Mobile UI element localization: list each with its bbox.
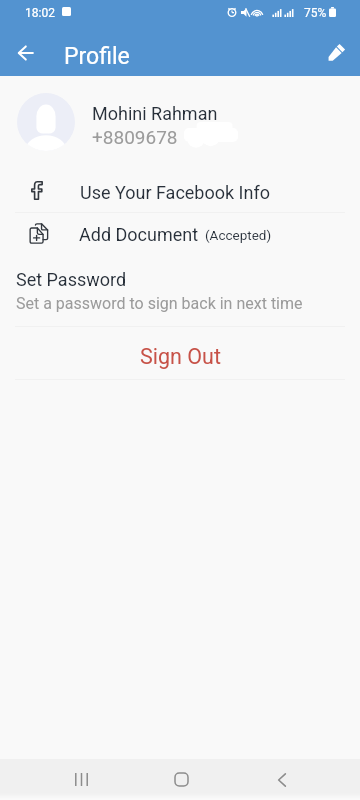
button[interactable]: Recent apps bbox=[41, 759, 121, 800]
button[interactable]: Sign Out bbox=[0, 327, 360, 379]
staticText: +8809678 bbox=[92, 126, 178, 148]
button[interactable]: Navigate up bbox=[3, 28, 47, 72]
button[interactable]: Back bbox=[241, 759, 321, 800]
staticText: Mohini Rahman bbox=[92, 103, 218, 124]
staticText: (Accepted) bbox=[205, 227, 272, 243]
staticText: Use Your Facebook Info bbox=[80, 182, 270, 203]
button[interactable]: Home bbox=[140, 759, 220, 800]
staticText: 18:02 bbox=[25, 6, 55, 20]
staticText: 75% bbox=[304, 6, 327, 20]
button[interactable]: Edit profile bbox=[315, 28, 359, 72]
button[interactable]: Set Password bbox=[0, 262, 360, 326]
staticText: Set a password to sign back in next time bbox=[16, 294, 303, 313]
button[interactable]: Mohini Rahman bbox=[0, 76, 360, 162]
staticText: Sign Out bbox=[140, 344, 221, 369]
button[interactable]: Use Your Facebook Info bbox=[0, 168, 360, 213]
button[interactable]: Add Document bbox=[0, 213, 360, 258]
staticText: Profile bbox=[64, 43, 130, 70]
staticText: Add Document bbox=[79, 224, 199, 245]
staticText: Set Password bbox=[16, 269, 127, 290]
